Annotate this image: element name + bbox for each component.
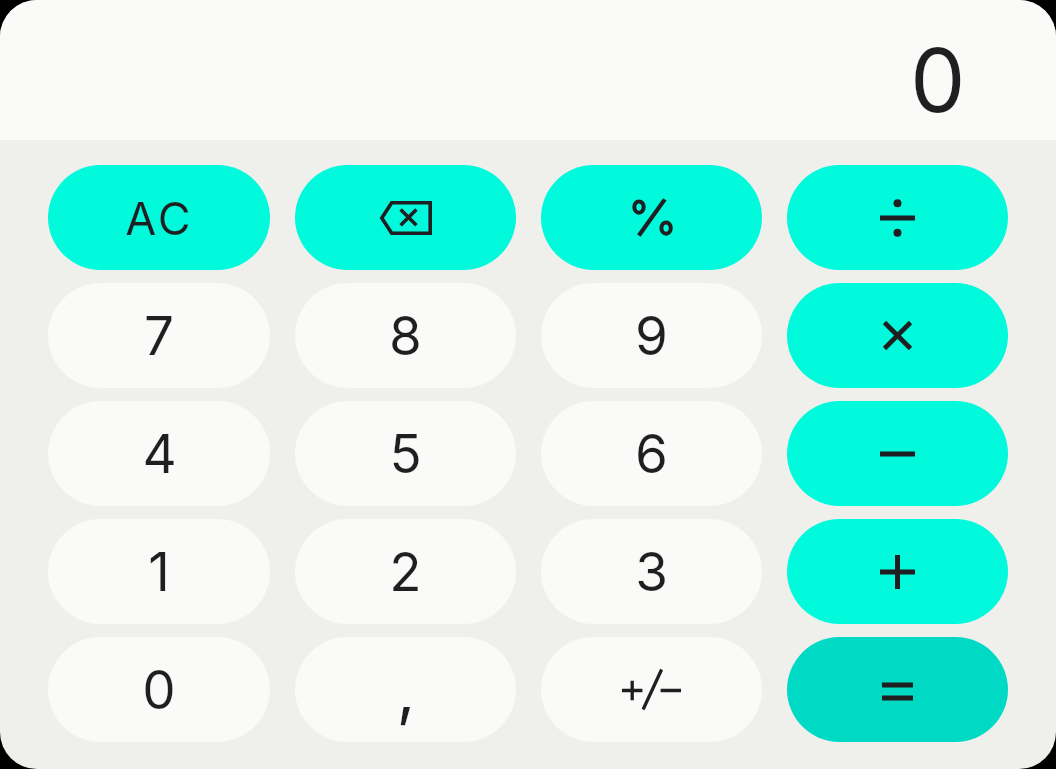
button[interactable]: Multiply (787, 283, 1008, 388)
staticText: 9 (635, 304, 668, 368)
button[interactable]: Plus (787, 519, 1008, 624)
staticText: 0 (910, 27, 966, 133)
button[interactable]: Percent (541, 165, 762, 270)
button[interactable]: 2 (295, 519, 516, 624)
button[interactable]: Change sign (541, 637, 762, 742)
button[interactable]: Result display, 0 (0, 0, 1056, 140)
button[interactable]: Equals (787, 637, 1008, 742)
button[interactable]: Minus (787, 401, 1008, 506)
button[interactable]: 5 (295, 401, 516, 506)
button[interactable]: 6 (541, 401, 762, 506)
button[interactable]: Decimal separator (295, 637, 516, 742)
staticText: 5 (389, 422, 422, 486)
staticText: 7 (144, 304, 174, 368)
button[interactable]: 8 (295, 283, 516, 388)
staticText: AC (125, 191, 194, 245)
button[interactable]: 3 (541, 519, 762, 624)
staticText: 6 (635, 422, 668, 486)
staticText: 2 (389, 540, 422, 604)
staticText: 3 (635, 540, 668, 604)
button[interactable]: All clear (48, 165, 270, 270)
button[interactable]: Divide (787, 165, 1008, 270)
button[interactable]: 1 (48, 519, 270, 624)
button[interactable]: 7 (48, 283, 270, 388)
button[interactable]: 0 (48, 637, 270, 742)
staticText: 0 (142, 658, 176, 722)
button[interactable]: 4 (48, 401, 270, 506)
staticText: 8 (389, 304, 422, 368)
button[interactable]: Backspace (295, 165, 516, 270)
staticText: , (396, 650, 416, 730)
staticText: 4 (142, 422, 177, 486)
staticText: 1 (148, 540, 170, 604)
button[interactable]: 9 (541, 283, 762, 388)
